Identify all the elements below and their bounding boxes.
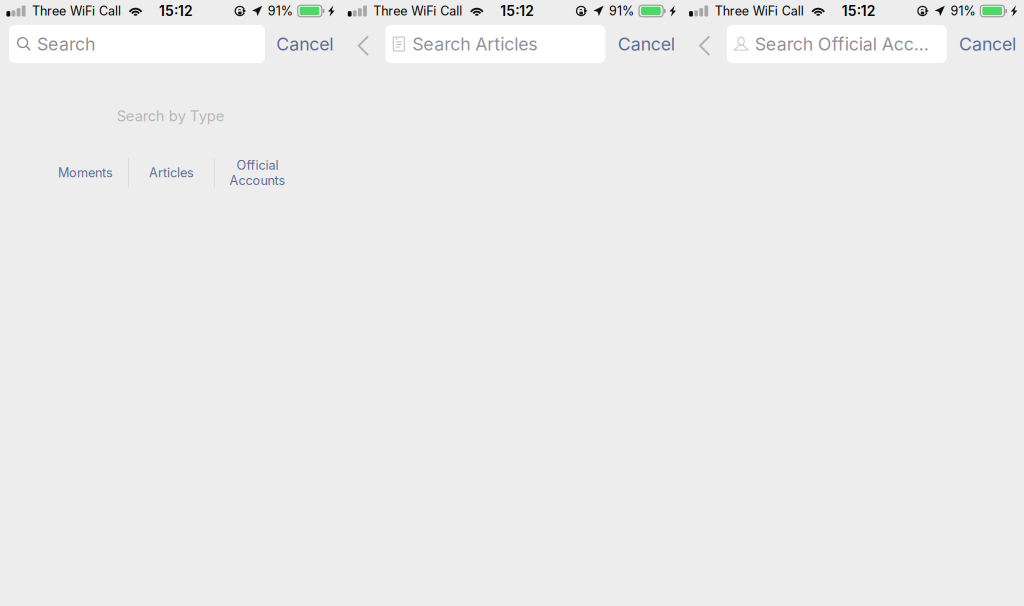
staticText: Cancel	[959, 33, 1016, 55]
staticText: Three WiFi Call	[715, 3, 804, 19]
staticText: Cancel	[276, 33, 333, 55]
button[interactable]: Search Official Acc...	[727, 25, 947, 63]
staticText: Search Official Acc...	[755, 33, 929, 55]
staticText: 91%	[950, 3, 975, 19]
button[interactable]: Official	[215, 156, 300, 190]
staticText: Articles	[149, 165, 194, 180]
staticText: 91%	[609, 3, 634, 19]
staticText: Search by Type	[117, 107, 225, 125]
staticText: 15:12	[842, 3, 876, 19]
staticText: Three WiFi Call	[32, 3, 121, 19]
staticText: Moments	[58, 165, 113, 180]
staticText: Search Articles	[412, 33, 537, 55]
button[interactable]: Back	[683, 22, 727, 66]
staticText: 15:12	[159, 3, 193, 19]
staticText: 15:12	[500, 3, 534, 19]
staticText: Search	[37, 33, 95, 55]
button[interactable]: Articles	[129, 156, 214, 190]
staticText: Accounts	[229, 173, 285, 188]
button[interactable]: Moments	[43, 156, 128, 190]
button[interactable]: Search Articles	[385, 25, 605, 63]
staticText: 91%	[268, 3, 293, 19]
button[interactable]: Search	[9, 25, 265, 63]
staticText: Three WiFi Call	[373, 3, 462, 19]
button[interactable]: Cancel	[959, 22, 1024, 66]
button[interactable]: Cancel	[618, 22, 683, 66]
staticText: Cancel	[618, 33, 675, 55]
staticText: Official	[236, 157, 278, 173]
button[interactable]: Cancel	[276, 22, 341, 66]
button[interactable]: Back	[341, 22, 385, 66]
